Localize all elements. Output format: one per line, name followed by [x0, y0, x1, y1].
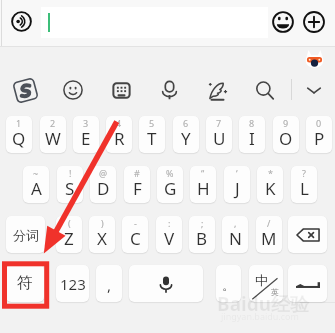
- button[interactable]: Collapse keyboard: [305, 81, 323, 99]
- staticText: ‘: [236, 167, 238, 179]
- button[interactable]: ‘: [224, 166, 250, 203]
- staticText: D: [97, 177, 110, 200]
- staticText: 123: [60, 274, 86, 294]
- staticText: ?: [302, 167, 306, 179]
- button[interactable]: @: [90, 166, 116, 203]
- button[interactable]: 0: [306, 116, 332, 153]
- staticText: !: [69, 167, 72, 179]
- staticText: Z: [64, 227, 74, 250]
- button[interactable]: 9: [273, 116, 299, 153]
- staticText: A: [31, 177, 42, 200]
- staticText: P: [314, 127, 325, 150]
- staticText: M: [261, 227, 277, 250]
- staticText: 中: [255, 272, 268, 288]
- staticText: 4: [116, 117, 122, 129]
- staticText: (: [68, 217, 71, 229]
- staticText: C: [130, 227, 141, 250]
- staticText: ~: [33, 167, 39, 179]
- button[interactable]: Voice input: [160, 81, 179, 100]
- staticText: S: [65, 177, 75, 200]
- staticText: B: [196, 227, 208, 250]
- staticText: ): [101, 217, 104, 229]
- button[interactable]: AI assistant: [304, 49, 325, 70]
- button[interactable]: 123: [56, 265, 89, 302]
- staticText: Y: [181, 127, 191, 150]
- button[interactable]: 4: [106, 116, 132, 153]
- staticText: 符: [17, 273, 33, 293]
- staticText: ;: [201, 217, 204, 229]
- button[interactable]: Chinese English toggle: [249, 265, 283, 302]
- staticText: T: [147, 127, 157, 150]
- button[interactable]: ~: [23, 166, 49, 203]
- button[interactable]: ;: [189, 216, 215, 253]
- staticText: 。: [222, 277, 235, 293]
- button[interactable]: 5: [139, 116, 165, 153]
- staticText: R: [114, 127, 125, 150]
- staticText: ,: [107, 275, 112, 295]
- button[interactable]: #: [124, 166, 150, 203]
- staticText: 1: [16, 117, 22, 129]
- staticText: K: [265, 177, 276, 200]
- button[interactable]: 。: [216, 265, 241, 302]
- staticText: 分词: [13, 227, 39, 243]
- staticText: 6: [183, 117, 189, 129]
- button[interactable]: 8: [239, 116, 265, 153]
- button[interactable]: 7: [206, 116, 232, 153]
- staticText: I: [249, 127, 255, 150]
- button[interactable]: (: [56, 216, 82, 253]
- staticText: 0: [316, 117, 322, 129]
- staticText: jingyan.baidu.com: [221, 310, 299, 322]
- staticText: E: [81, 127, 91, 150]
- button[interactable]: Emoji: [272, 11, 294, 33]
- button[interactable]: “: [190, 166, 216, 203]
- button[interactable]: ): [89, 216, 115, 253]
- button[interactable]: Voice input: [129, 265, 203, 302]
- staticText: G: [164, 177, 177, 200]
- button[interactable]: Sogou logo: [14, 79, 37, 102]
- button[interactable]: 符: [6, 265, 44, 302]
- button[interactable]: %: [157, 166, 183, 203]
- button[interactable]: Add: [303, 11, 325, 33]
- staticText: J: [235, 177, 240, 200]
- button[interactable]: /: [256, 216, 282, 253]
- button[interactable]: Emoticons: [63, 80, 83, 100]
- staticText: H: [197, 177, 210, 200]
- button[interactable]: 2: [40, 116, 66, 153]
- staticText: %: [166, 167, 174, 179]
- staticText: O: [279, 127, 293, 150]
- button[interactable]: -: [122, 216, 148, 253]
- button[interactable]: ,: [222, 216, 248, 253]
- button[interactable]: Voice input: [11, 11, 32, 32]
- staticText: N: [229, 227, 242, 250]
- button[interactable]: Search: [255, 81, 274, 100]
- staticText: :: [168, 217, 171, 229]
- staticText: 7: [216, 117, 222, 129]
- button[interactable]: 1: [6, 116, 32, 153]
- button[interactable]: Enter: [288, 265, 327, 302]
- button[interactable]: :: [156, 216, 182, 253]
- staticText: 8: [249, 117, 255, 129]
- button[interactable]: *: [257, 166, 283, 203]
- button[interactable]: [41, 7, 268, 38]
- staticText: -: [134, 217, 137, 229]
- staticText: *: [268, 167, 273, 179]
- button[interactable]: 6: [173, 116, 199, 153]
- button[interactable]: !: [57, 166, 83, 203]
- staticText: L: [300, 177, 309, 200]
- button[interactable]: ,: [96, 265, 122, 302]
- staticText: F: [133, 177, 142, 200]
- button[interactable]: Backspace: [288, 216, 327, 253]
- button[interactable]: 3: [73, 116, 99, 153]
- staticText: Q: [12, 127, 26, 150]
- staticText: W: [45, 127, 61, 150]
- staticText: 5: [149, 117, 155, 129]
- staticText: ,: [234, 217, 237, 229]
- button[interactable]: 分词: [6, 216, 45, 253]
- button[interactable]: ?: [291, 166, 317, 203]
- button[interactable]: Keyboard layout: [112, 81, 131, 100]
- staticText: V: [164, 227, 175, 250]
- staticText: 2: [50, 117, 56, 129]
- button[interactable]: Handwriting: [208, 81, 227, 100]
- staticText: 9: [283, 117, 289, 129]
- staticText: 英: [271, 287, 279, 297]
